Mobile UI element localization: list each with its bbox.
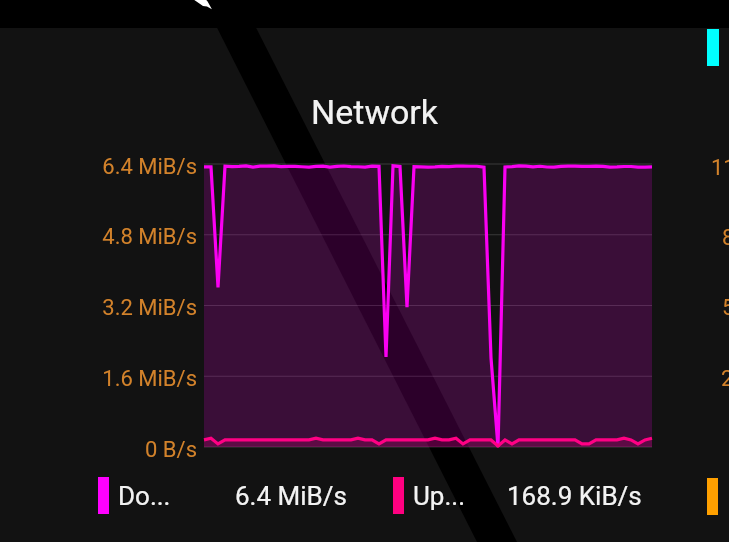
staticText: 0 B/s [67, 437, 197, 463]
staticText: 6.4 MiB/s [67, 154, 197, 180]
staticText: 6.4 MiB/s [235, 481, 347, 511]
button[interactable]: Up... [393, 477, 466, 514]
staticText: 11 [711, 155, 729, 181]
staticText: 8 [722, 225, 729, 251]
staticText: 5 [722, 295, 729, 321]
staticText: 3.2 MiB/s [67, 295, 197, 321]
staticText: 4.8 MiB/s [67, 224, 197, 250]
staticText: 168.9 KiB/s [507, 481, 642, 511]
staticText: Up... [413, 481, 466, 511]
staticText: Do... [118, 481, 171, 511]
button[interactable]: Do... [98, 477, 171, 514]
staticText: Network [311, 92, 439, 132]
staticText: 1.6 MiB/s [67, 366, 197, 392]
button[interactable] [0, 0, 729, 542]
staticText: 2 [721, 366, 729, 392]
